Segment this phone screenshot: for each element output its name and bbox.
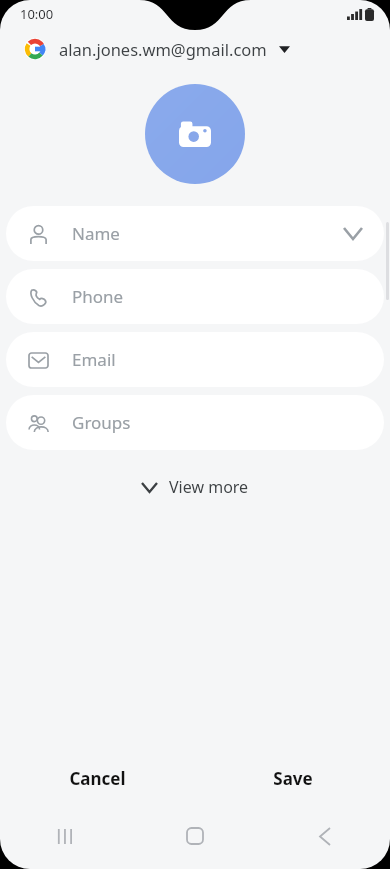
staticText: Name — [72, 222, 344, 245]
staticText: 10:00 — [20, 5, 54, 23]
staticText: Groups — [72, 411, 362, 434]
button[interactable]: Save — [195, 755, 390, 801]
button[interactable]: Home — [130, 817, 260, 855]
button[interactable]: Back — [260, 817, 390, 855]
button[interactable]: View more — [128, 468, 263, 506]
staticText: alan.jones.wm@gmail.com — [59, 38, 267, 60]
staticText: Cancel — [69, 767, 126, 790]
button[interactable]: Cancel — [0, 755, 195, 801]
button[interactable]: Name — [6, 206, 384, 261]
button[interactable]: Phone — [6, 269, 384, 324]
button[interactable]: Add photo — [145, 84, 245, 184]
button[interactable]: Email — [6, 332, 384, 387]
staticText: Save — [273, 767, 313, 790]
staticText: Email — [72, 348, 362, 371]
button[interactable]: Recent apps — [0, 817, 130, 855]
staticText: View more — [169, 476, 249, 498]
button[interactable]: Groups — [6, 395, 384, 450]
staticText: Phone — [72, 285, 362, 308]
button[interactable]: alan.jones.wm@gmail.com — [0, 28, 390, 70]
